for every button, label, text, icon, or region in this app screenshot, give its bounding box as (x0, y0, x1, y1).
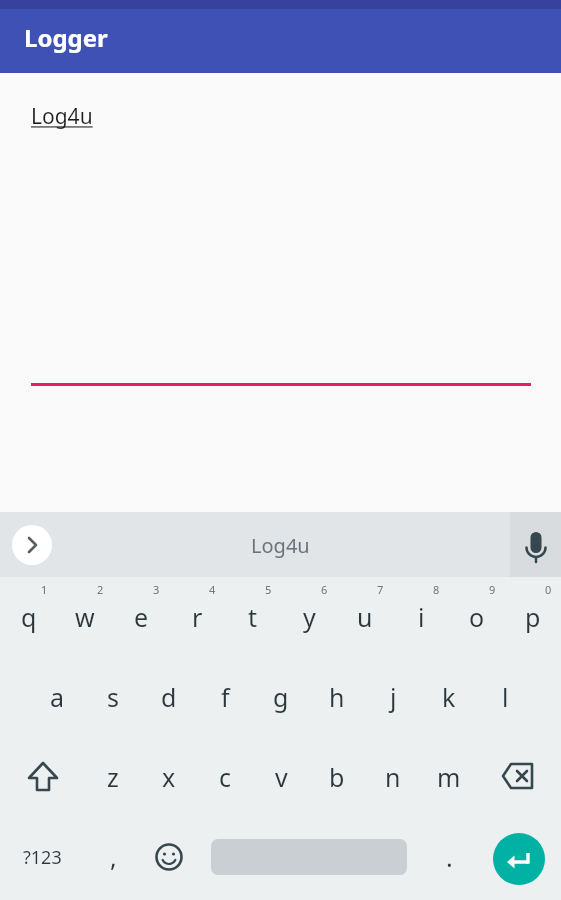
staticText: 9 (489, 582, 496, 597)
staticText: h (329, 680, 345, 714)
staticText: u (357, 600, 373, 634)
button[interactable]: c (197, 737, 253, 817)
staticText: j (390, 680, 397, 714)
button[interactable]: h (309, 657, 365, 737)
button[interactable]: f (197, 657, 253, 737)
staticText: 8 (433, 582, 440, 597)
staticText: p (525, 600, 541, 634)
staticText: t (248, 600, 258, 634)
staticText: 5 (265, 582, 272, 597)
button[interactable]: t (225, 577, 281, 657)
staticText: 3 (153, 582, 160, 597)
button[interactable] (12, 525, 52, 565)
staticText: v (275, 760, 288, 794)
staticText: Logger (24, 21, 108, 54)
button[interactable]: . (421, 817, 477, 897)
button[interactable] (510, 512, 561, 577)
staticText: l (502, 680, 509, 714)
button[interactable]: Log4u (251, 532, 310, 559)
staticText: e (134, 600, 149, 634)
staticText: m (437, 760, 461, 794)
button[interactable]: x (141, 737, 197, 817)
staticText: z (107, 760, 119, 794)
staticText: i (418, 600, 425, 634)
button[interactable]: z (85, 737, 141, 817)
staticText: y (303, 600, 316, 634)
button[interactable]: w (57, 577, 113, 657)
staticText: 0 (545, 582, 552, 597)
staticText: 2 (97, 582, 104, 597)
button[interactable] (477, 737, 561, 817)
staticText: c (219, 760, 232, 794)
button[interactable]: ?123 (0, 817, 85, 897)
staticText: q (21, 600, 37, 634)
button[interactable]: s (85, 657, 141, 737)
button[interactable]: u (337, 577, 393, 657)
staticText: w (75, 600, 95, 634)
button[interactable]: v (253, 737, 309, 817)
button[interactable]: q (0, 577, 57, 657)
staticText: b (329, 760, 345, 794)
staticText: f (221, 680, 230, 714)
button[interactable]: a (29, 657, 85, 737)
button[interactable]: i (393, 577, 449, 657)
staticText: 4 (209, 582, 216, 597)
button[interactable]: r (169, 577, 225, 657)
button[interactable] (477, 817, 561, 897)
staticText: g (273, 680, 289, 714)
staticText: ?123 (23, 845, 62, 870)
button[interactable]: j (365, 657, 421, 737)
button[interactable]: b (309, 737, 365, 817)
button[interactable]: y (281, 577, 337, 657)
button[interactable]: d (141, 657, 197, 737)
staticText: d (161, 680, 177, 714)
staticText: 7 (377, 582, 384, 597)
staticText: s (107, 680, 119, 714)
button[interactable] (0, 737, 85, 817)
staticText: n (385, 760, 401, 794)
staticText: k (442, 680, 456, 714)
button[interactable]: p (505, 577, 561, 657)
button[interactable]: g (253, 657, 309, 737)
button[interactable]: k (421, 657, 477, 737)
button[interactable]: Log4u (31, 102, 93, 131)
button[interactable]: m (421, 737, 477, 817)
button[interactable]: , (85, 817, 141, 897)
staticText: 6 (321, 582, 328, 597)
button[interactable] (141, 817, 197, 897)
staticText: , (110, 840, 117, 874)
staticText: o (469, 600, 485, 634)
button[interactable] (197, 817, 421, 897)
staticText: 1 (41, 582, 48, 597)
button[interactable]: l (477, 657, 533, 737)
button[interactable]: o (449, 577, 505, 657)
staticText: r (192, 600, 203, 634)
staticText: a (50, 680, 65, 714)
staticText: x (162, 760, 176, 794)
staticText: . (446, 840, 453, 874)
button[interactable]: e (113, 577, 169, 657)
button[interactable]: n (365, 737, 421, 817)
